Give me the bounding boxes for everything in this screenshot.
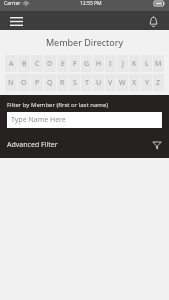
button[interactable]: W (117, 74, 128, 91)
button[interactable]: G (81, 55, 92, 72)
staticText: Member Directory (0, 36, 169, 48)
staticText: A (9, 59, 14, 69)
staticText: E (61, 59, 65, 69)
staticText: L (145, 59, 149, 69)
button[interactable]: Z (153, 74, 164, 91)
staticText: R (60, 78, 65, 88)
button[interactable]: X (129, 74, 140, 91)
button[interactable]: T (81, 74, 92, 91)
button[interactable]: H (93, 55, 104, 72)
button[interactable]: U (93, 74, 104, 91)
staticText: I (109, 59, 112, 69)
button[interactable]: Type Name Here (7, 112, 162, 128)
staticText: Q (47, 78, 53, 88)
staticText: O (21, 78, 27, 88)
staticText: J (122, 59, 124, 69)
button[interactable]: D (44, 55, 56, 72)
staticText: Z (156, 78, 161, 88)
staticText: C (35, 59, 40, 69)
staticText: N (8, 78, 14, 88)
button[interactable]: M (153, 55, 164, 72)
staticText: B (22, 59, 27, 69)
button[interactable]: Advanced Filter (7, 137, 162, 153)
staticText: X (132, 78, 137, 88)
staticText: H (96, 59, 102, 69)
button[interactable]: Y (141, 74, 152, 91)
staticText: G (84, 59, 90, 69)
staticText: Advanced Filter (7, 140, 58, 150)
button[interactable]: A (5, 55, 17, 72)
staticText: U (96, 78, 102, 88)
staticText: M (155, 59, 162, 69)
button[interactable]: B (18, 55, 30, 72)
button[interactable]: C (31, 55, 43, 72)
staticText: S (73, 78, 77, 88)
staticText: W (119, 78, 126, 88)
button[interactable]: P (31, 74, 43, 91)
button[interactable]: I (105, 55, 116, 72)
staticText: 12:55 PM (80, 0, 102, 7)
button[interactable]: J (117, 55, 128, 72)
button[interactable]: F (69, 55, 80, 72)
button[interactable]: N (5, 74, 17, 91)
staticText: T (85, 78, 89, 88)
staticText: Y (145, 78, 149, 88)
staticText: F (73, 59, 77, 69)
staticText: D (47, 59, 53, 69)
staticText: P (35, 78, 40, 88)
button[interactable]: Notifications (144, 13, 162, 29)
button[interactable]: Menu (7, 13, 25, 29)
button[interactable]: O (18, 74, 30, 91)
button[interactable]: K (129, 55, 140, 72)
button[interactable]: R (57, 74, 68, 91)
button[interactable]: E (57, 55, 68, 72)
staticText: Type Name Here (11, 115, 66, 125)
staticText: V (108, 78, 113, 88)
staticText: Filter by Member (first or last name) (7, 101, 109, 109)
staticText: K (132, 59, 137, 69)
button[interactable]: V (105, 74, 116, 91)
staticText: Carrier (4, 0, 21, 7)
button[interactable]: L (141, 55, 152, 72)
button[interactable]: S (69, 74, 80, 91)
button[interactable]: Q (44, 74, 56, 91)
